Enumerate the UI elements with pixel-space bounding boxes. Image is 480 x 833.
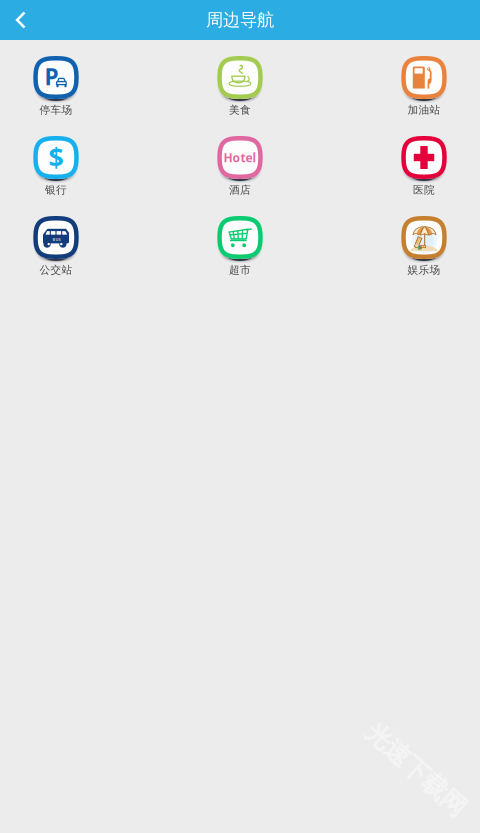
button[interactable]: Hotel: [184, 136, 296, 216]
staticText: 加油站: [407, 103, 440, 116]
button[interactable]: 娱乐场: [368, 216, 480, 296]
staticText: BUS: [52, 237, 60, 242]
button[interactable]: 美食: [184, 56, 296, 136]
button[interactable]: 医院: [368, 136, 480, 216]
staticText: 美食: [229, 103, 251, 116]
button[interactable]: $: [0, 136, 112, 216]
staticText: Hotel: [223, 149, 256, 165]
button[interactable]: 超市: [184, 216, 296, 296]
staticText: 周边导航: [206, 9, 274, 31]
staticText: 娱乐场: [407, 263, 440, 276]
staticText: 酒店: [229, 183, 251, 196]
button[interactable]: P: [0, 56, 112, 136]
button[interactable]: BUS: [0, 216, 112, 296]
staticText: 公交站: [39, 263, 72, 276]
staticText: $: [48, 140, 63, 175]
button[interactable]: Back: [0, 0, 42, 40]
staticText: 医院: [413, 183, 435, 196]
button[interactable]: 加油站: [368, 56, 480, 136]
staticText: 停车场: [39, 103, 72, 116]
staticText: 超市: [229, 263, 251, 276]
staticText: P: [44, 61, 58, 91]
staticText: 银行: [45, 183, 67, 196]
